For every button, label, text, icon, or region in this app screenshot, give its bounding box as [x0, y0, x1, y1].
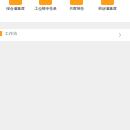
button[interactable]: 投诉满意度 — [92, 0, 123, 11]
button[interactable]: 工位部申告单 — [30, 0, 61, 11]
button[interactable]: 工作流 — [0, 29, 130, 41]
staticText: 工作流 — [5, 31, 17, 36]
other: 更多 — [118, 33, 122, 37]
button[interactable]: 月度报告 — [61, 0, 92, 11]
staticText: 综合满意度 — [6, 6, 25, 11]
button[interactable]: 综合满意度 — [0, 0, 30, 11]
staticText: 工位部申告单 — [34, 6, 57, 11]
staticText: 投诉满意度 — [98, 6, 117, 11]
staticText: 月度报告 — [69, 6, 84, 11]
